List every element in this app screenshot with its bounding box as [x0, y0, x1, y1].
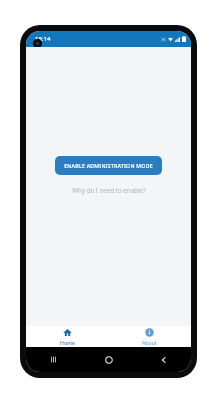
- staticText: 15:14: [35, 35, 51, 43]
- staticText: About: [142, 339, 157, 346]
- button[interactable]: Back: [136, 347, 191, 372]
- button[interactable]: ENABLE ADMINISTRATION MODE: [55, 156, 162, 175]
- button[interactable]: Recent apps: [26, 347, 81, 372]
- button[interactable]: Why do I need to enable?: [72, 186, 146, 194]
- button[interactable]: Home: [81, 347, 136, 372]
- staticText: Home: [60, 339, 75, 346]
- button[interactable]: Home: [26, 326, 108, 347]
- staticText: ENABLE ADMINISTRATION MODE: [64, 162, 153, 169]
- button[interactable]: About: [108, 326, 191, 347]
- staticText: Why do I need to enable?: [72, 186, 146, 194]
